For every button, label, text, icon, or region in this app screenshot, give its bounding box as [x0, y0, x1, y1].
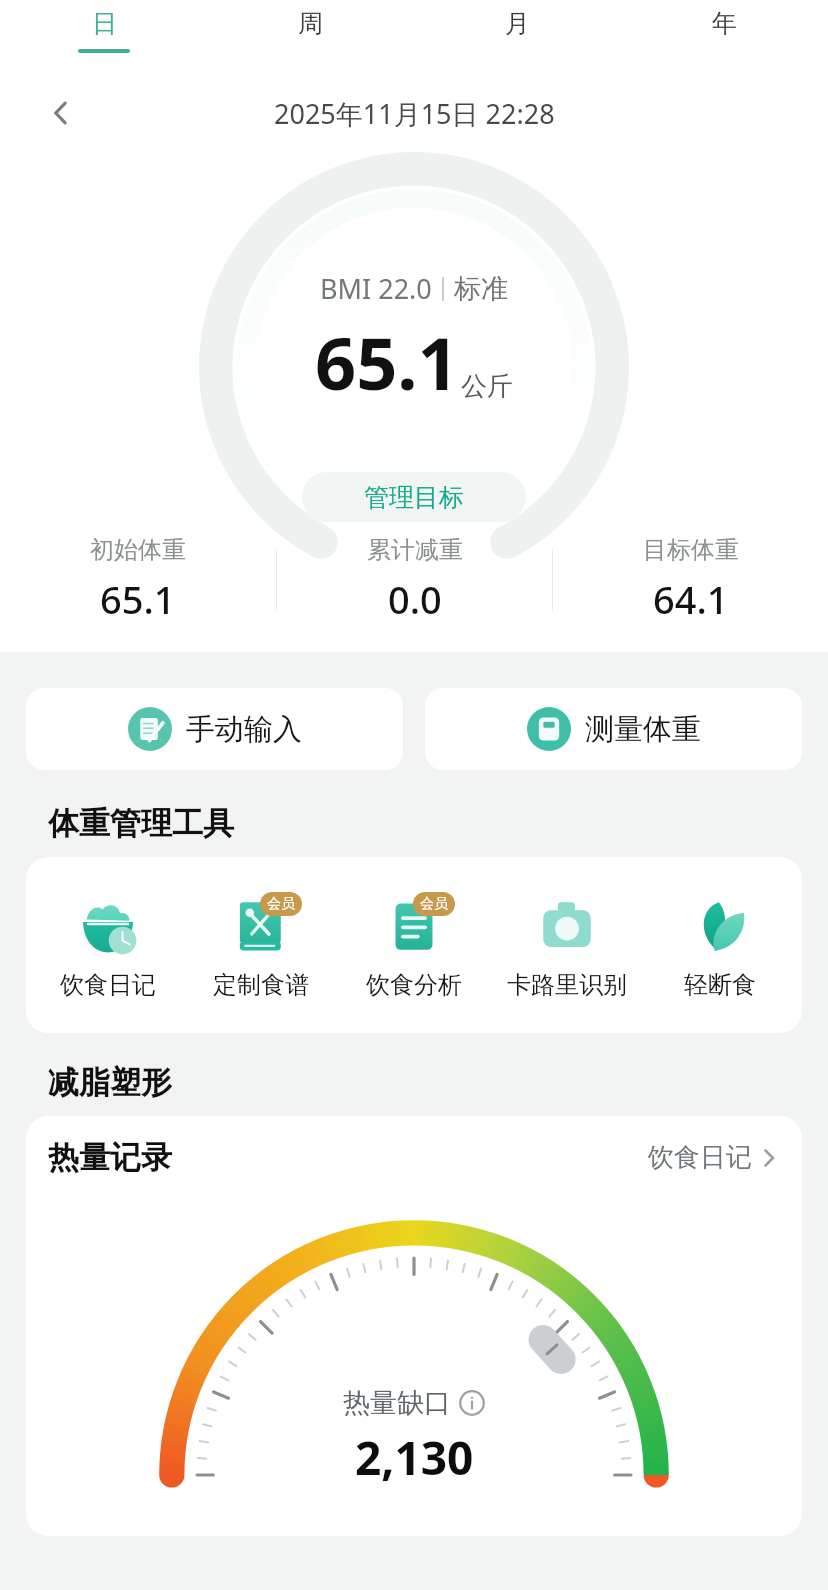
staticText: 2,130 — [355, 1426, 474, 1489]
staticText: 64.1 — [653, 573, 729, 625]
staticText: 轻断食 — [684, 970, 756, 1000]
staticText: 饮食日记 — [648, 1141, 752, 1174]
button[interactable]: 手动输入 — [26, 688, 403, 770]
button[interactable]: Previous day — [40, 92, 82, 134]
staticText: 65.1 — [100, 573, 176, 625]
staticText: 饮食日记 — [60, 970, 156, 1000]
button[interactable]: 周 — [207, 8, 414, 70]
button[interactable]: 饮食日记 — [32, 857, 184, 1033]
staticText: 年 — [712, 8, 737, 39]
staticText: 热量缺口 — [343, 1386, 451, 1420]
staticText: 2025年11月15日 22:28 — [274, 95, 555, 132]
staticText: 手动输入 — [186, 711, 302, 748]
button[interactable]: 卡路里识别 — [490, 857, 643, 1033]
staticText: 累计减重 — [367, 535, 463, 565]
button[interactable]: 月 — [414, 8, 621, 70]
staticText: 减脂塑形 — [48, 1063, 172, 1102]
staticText: 会员 — [420, 895, 448, 913]
staticText: 目标体重 — [643, 535, 739, 565]
staticText: 卡路里识别 — [507, 970, 627, 1000]
button[interactable]: 饮食日记 — [648, 1141, 780, 1174]
staticText: 标准 — [454, 272, 508, 306]
staticText: 0.0 — [388, 573, 442, 625]
staticText: 周 — [298, 8, 323, 39]
button[interactable]: 会员 — [337, 857, 490, 1033]
button[interactable]: 管理目标 — [302, 472, 526, 522]
button[interactable]: 测量体重 — [425, 688, 802, 770]
staticText: 测量体重 — [585, 711, 701, 748]
staticText: 日 — [92, 8, 117, 39]
button[interactable]: 轻断食 — [643, 857, 796, 1033]
staticText: 体重管理工具 — [48, 804, 234, 843]
staticText: 公斤 — [461, 370, 513, 403]
staticText: 初始体重 — [90, 535, 186, 565]
staticText: BMI 22.0 — [320, 270, 432, 307]
button[interactable]: 会员 — [184, 857, 337, 1033]
button[interactable]: 年 — [621, 8, 828, 70]
staticText: 饮食分析 — [366, 970, 462, 1000]
button[interactable]: 初始体重 — [0, 535, 276, 625]
staticText: 管理目标 — [364, 482, 464, 513]
button[interactable]: 目标体重 — [553, 535, 828, 625]
staticText: 定制食谱 — [213, 970, 309, 1000]
staticText: 热量记录 — [48, 1138, 172, 1177]
staticText: 65.1 — [315, 313, 459, 411]
button[interactable]: 日 — [0, 8, 207, 70]
staticText: 会员 — [267, 895, 295, 913]
button[interactable]: 累计减重 — [277, 535, 552, 625]
staticText: 月 — [505, 8, 530, 39]
